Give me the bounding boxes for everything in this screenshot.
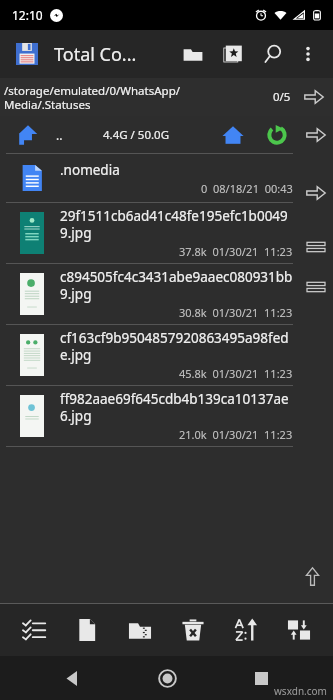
button[interactable]: New file xyxy=(64,607,110,653)
button[interactable]: Recent apps xyxy=(239,656,283,700)
staticText: 12:10 xyxy=(12,7,43,23)
button[interactable]: cf163cf9b9504857920863495a98fede.jpg xyxy=(0,325,333,386)
staticText: 21.0k 01/30/21 11:23 xyxy=(179,427,293,442)
button[interactable]: Search xyxy=(255,36,291,72)
button[interactable]: More options xyxy=(293,39,323,69)
button[interactable]: Compress xyxy=(117,607,163,653)
button[interactable]: Home xyxy=(211,116,255,154)
staticText: ff982aae69f645cdb4b139ca10137ae6.jpg xyxy=(60,390,293,425)
button[interactable]: Refresh xyxy=(255,116,299,154)
button[interactable]: c894505fc4c3431abe9aaec080931bb9.jpg xyxy=(0,264,333,325)
staticText: .nomedia xyxy=(60,161,120,179)
staticText: .. xyxy=(56,127,63,143)
staticText: c894505fc4c3431abe9aaec080931bb9.jpg xyxy=(60,268,293,303)
button[interactable]: Total Commander xyxy=(10,37,44,71)
button[interactable]: Sort xyxy=(223,607,269,653)
staticText: 30.8k 01/30/21 11:23 xyxy=(179,305,293,320)
staticText: 0 08/18/21 00:43 xyxy=(201,181,293,196)
button[interactable]: 29f1511cb6ad41c48fe195efc1b00499.jpg xyxy=(0,203,333,264)
button[interactable]: Home xyxy=(145,656,189,700)
button[interactable]: Back xyxy=(50,656,94,700)
button[interactable]: ff982aae69f645cdb4b139ca10137ae6.jpg xyxy=(0,386,333,447)
staticText: 0/5 xyxy=(273,89,291,105)
button[interactable]: Delete xyxy=(170,607,216,653)
staticText: 29f1511cb6ad41c48fe195efc1b00499.jpg xyxy=(60,207,293,242)
staticText: 45.8k 01/30/21 11:23 xyxy=(179,366,293,381)
button[interactable]: Folders xyxy=(175,36,211,72)
button[interactable]: Up one level xyxy=(0,116,56,154)
staticText: /storage/emulated/0/WhatsApp/ Media/.Sta… xyxy=(4,83,273,112)
staticText: 4.4G / 50.0G xyxy=(103,127,170,143)
button[interactable]: Select all xyxy=(11,607,57,653)
button[interactable]: Bookmarks xyxy=(215,36,251,72)
staticText: cf163cf9b9504857920863495a98fede.jpg xyxy=(60,329,293,364)
staticText: Total Co... xyxy=(54,42,137,67)
button[interactable]: Swipe right xyxy=(297,78,331,116)
button[interactable]: Move xyxy=(276,607,322,653)
button[interactable]: .nomedia xyxy=(0,154,333,203)
staticText: 37.8k 01/30/21 11:23 xyxy=(179,244,293,259)
staticText: wsxdn.com xyxy=(274,684,327,698)
button[interactable]: Scroll to top xyxy=(299,563,325,589)
